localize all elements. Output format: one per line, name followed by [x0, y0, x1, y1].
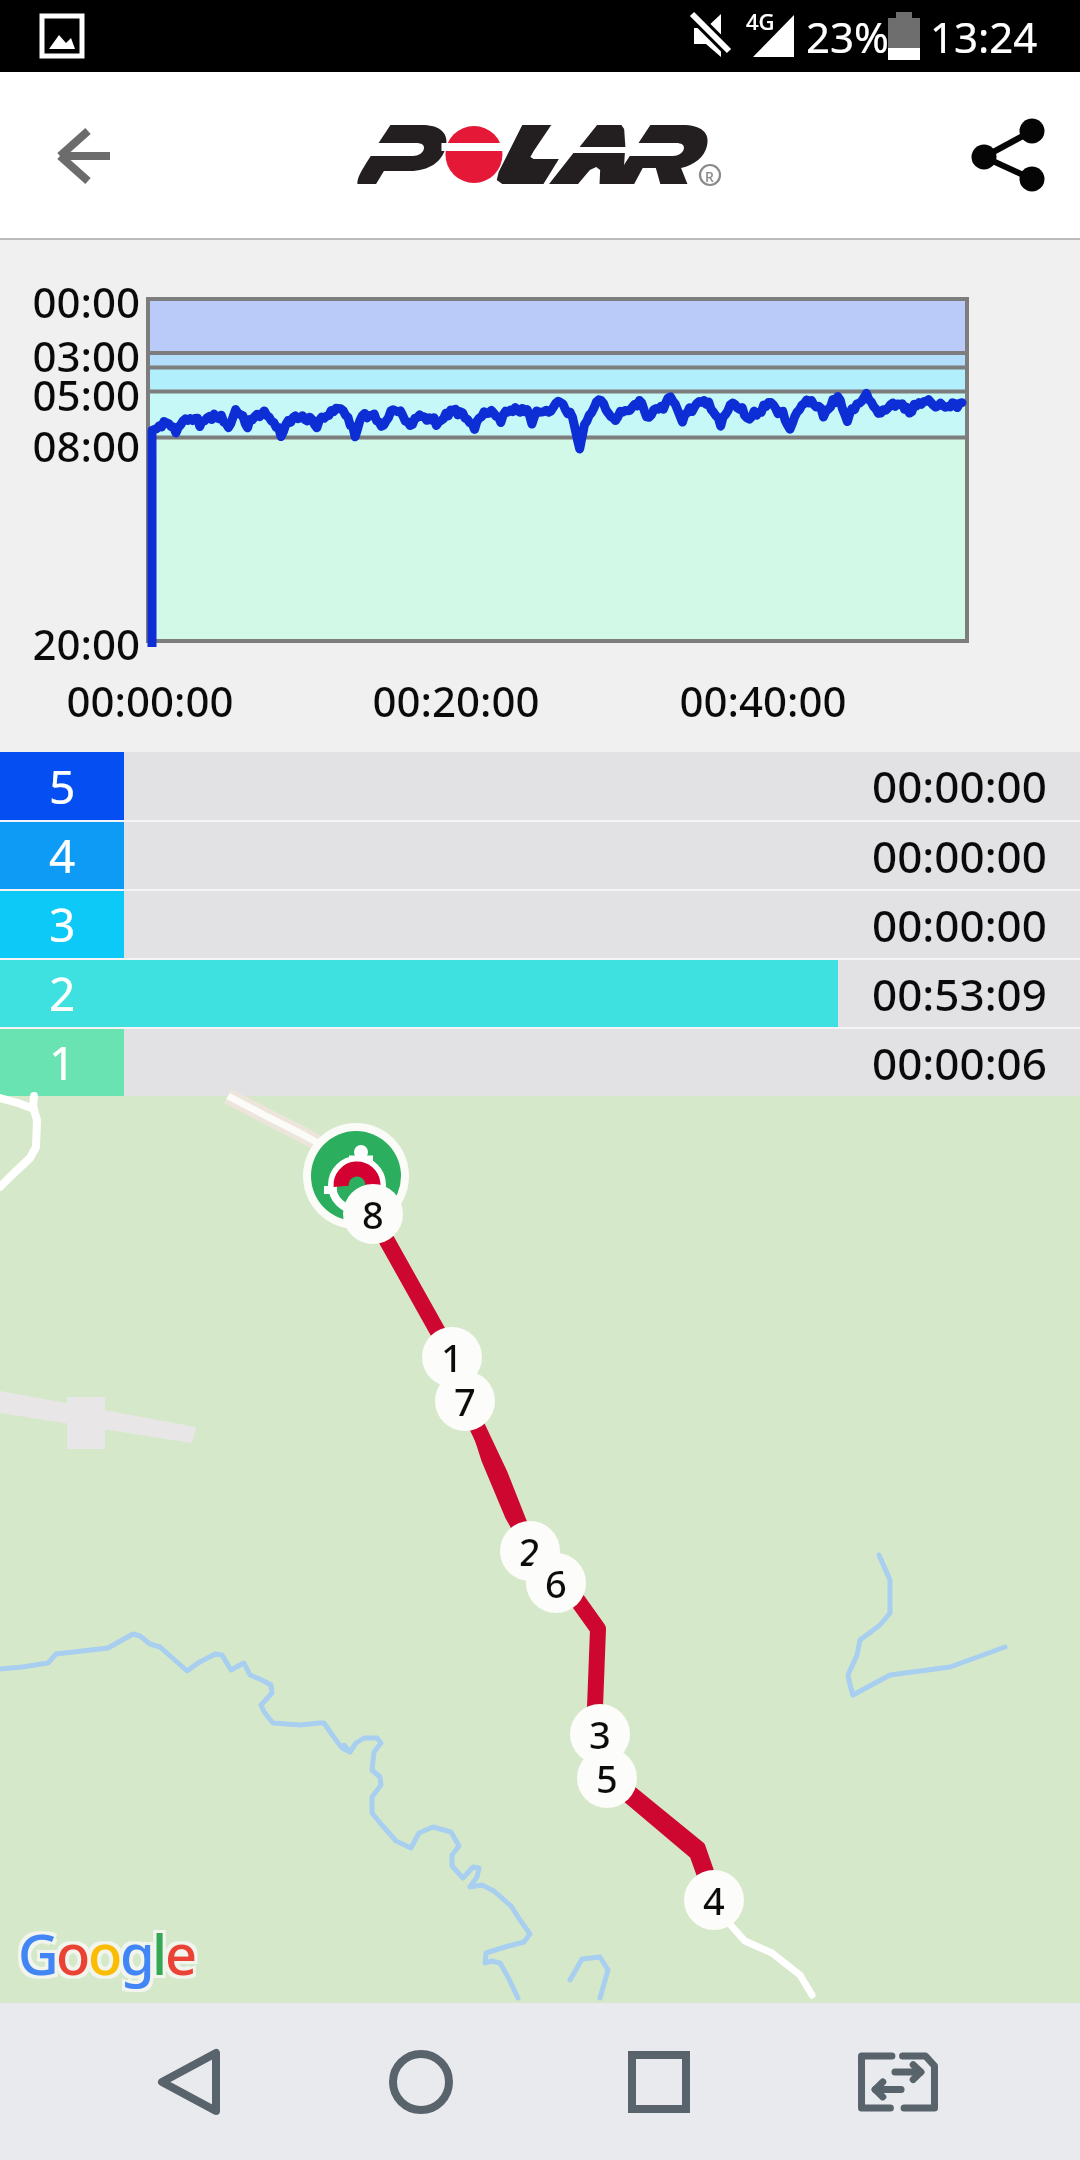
staticText: o: [88, 1915, 120, 1991]
staticText: g: [117, 1912, 149, 1988]
staticText: l: [155, 1912, 168, 1988]
button[interactable]: Back: [30, 104, 134, 208]
button[interactable]: 3: [0, 891, 1080, 958]
staticText: 03:00: [0, 327, 140, 384]
staticText: o: [85, 1918, 117, 1994]
button[interactable]: Home: [361, 2003, 481, 2160]
staticText: 4: [49, 824, 76, 887]
staticText: 5: [596, 1752, 618, 1804]
staticText: e: [168, 1912, 198, 1988]
staticText: G: [15, 1912, 53, 1988]
staticText: G: [18, 1915, 56, 1991]
staticText: 00:40:00: [643, 672, 883, 729]
staticText: o: [56, 1915, 88, 1991]
staticText: 00:00:06: [872, 1033, 1047, 1093]
staticText: 8: [362, 1188, 384, 1240]
button[interactable]: Recents: [599, 2003, 719, 2160]
staticText: G: [15, 1918, 53, 1994]
staticText: 00:00:00: [872, 756, 1047, 816]
staticText: 6: [545, 1557, 567, 1609]
staticText: 4: [703, 1874, 725, 1926]
staticText: l: [155, 1918, 168, 1994]
button[interactable]: Switch app: [838, 2003, 958, 2160]
staticText: g: [120, 1915, 152, 1991]
button[interactable]: Share: [952, 106, 1052, 206]
staticText: 4G: [746, 6, 775, 36]
staticText: 13:24: [930, 8, 1038, 65]
staticText: 08:00: [0, 417, 140, 474]
staticText: o: [59, 1912, 91, 1988]
staticText: o: [85, 1912, 117, 1988]
button[interactable]: 4: [0, 822, 1080, 889]
staticText: R: [705, 167, 714, 186]
staticText: 05:00: [0, 366, 140, 423]
staticText: 2: [49, 962, 76, 1025]
button[interactable]: Back: [130, 2003, 250, 2160]
staticText: o: [91, 1918, 123, 1994]
staticText: g: [123, 1912, 155, 1988]
staticText: o: [53, 1912, 85, 1988]
staticText: e: [165, 1915, 195, 1991]
staticText: l: [152, 1915, 165, 1991]
staticText: l: [149, 1918, 162, 1994]
staticText: 1: [441, 1331, 463, 1383]
staticText: 2: [519, 1525, 541, 1577]
staticText: 3: [589, 1708, 611, 1760]
staticText: 00:53:09: [872, 964, 1047, 1024]
staticText: e: [162, 1912, 192, 1988]
staticText: 00:00:00: [872, 826, 1047, 886]
staticText: 00:00:00: [30, 672, 270, 729]
staticText: 7: [454, 1375, 476, 1427]
staticText: G: [21, 1912, 59, 1988]
staticText: 00:00: [0, 273, 140, 330]
staticText: e: [168, 1918, 198, 1994]
staticText: 20:00: [0, 615, 140, 672]
staticText: 00:20:00: [336, 672, 576, 729]
staticText: g: [123, 1918, 155, 1994]
button[interactable]: 1: [0, 1029, 1080, 1096]
staticText: g: [117, 1918, 149, 1994]
button[interactable]: 5: [0, 752, 1080, 820]
staticText: e: [162, 1918, 192, 1994]
staticText: 5: [49, 755, 76, 818]
staticText: o: [59, 1918, 91, 1994]
staticText: o: [53, 1918, 85, 1994]
staticText: 1: [49, 1031, 76, 1094]
button[interactable]: 2: [0, 960, 1080, 1027]
staticText: 3: [49, 893, 76, 956]
staticText: o: [91, 1912, 123, 1988]
staticText: 23%: [806, 8, 889, 65]
staticText: G: [21, 1918, 59, 1994]
staticText: l: [149, 1912, 162, 1988]
staticText: 00:00:00: [872, 895, 1047, 955]
